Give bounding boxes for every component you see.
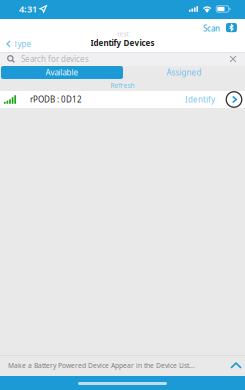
staticText: Identify Devices bbox=[90, 37, 154, 48]
button[interactable]: Type bbox=[0, 36, 34, 51]
staticText: Refresh bbox=[110, 81, 134, 90]
button[interactable]: Scan bbox=[201, 21, 222, 36]
staticText: Identify bbox=[185, 94, 215, 105]
staticText: Type bbox=[13, 38, 31, 49]
staticText: rPODB : 0D12 bbox=[30, 94, 82, 105]
staticText: Scan bbox=[203, 23, 220, 34]
button[interactable]: Assigned bbox=[123, 66, 245, 79]
button[interactable]: Refresh bbox=[0, 80, 245, 91]
button[interactable]: Available bbox=[1, 66, 123, 79]
staticText: 4:31 bbox=[19, 3, 37, 15]
button[interactable]: Make a Battery Powered Device Appear in … bbox=[0, 355, 245, 376]
staticText: Make a Battery Powered Device Appear in … bbox=[8, 361, 195, 370]
staticText: Test bbox=[116, 30, 128, 38]
button[interactable]: Bluetooth scan bbox=[226, 23, 237, 32]
staticText: Search for devices bbox=[21, 54, 89, 64]
button[interactable]: Clear search bbox=[224, 53, 245, 65]
staticText: Assigned bbox=[166, 67, 201, 78]
button[interactable]: rPODB : 0D12 bbox=[0, 91, 245, 108]
staticText: Available bbox=[45, 67, 78, 78]
